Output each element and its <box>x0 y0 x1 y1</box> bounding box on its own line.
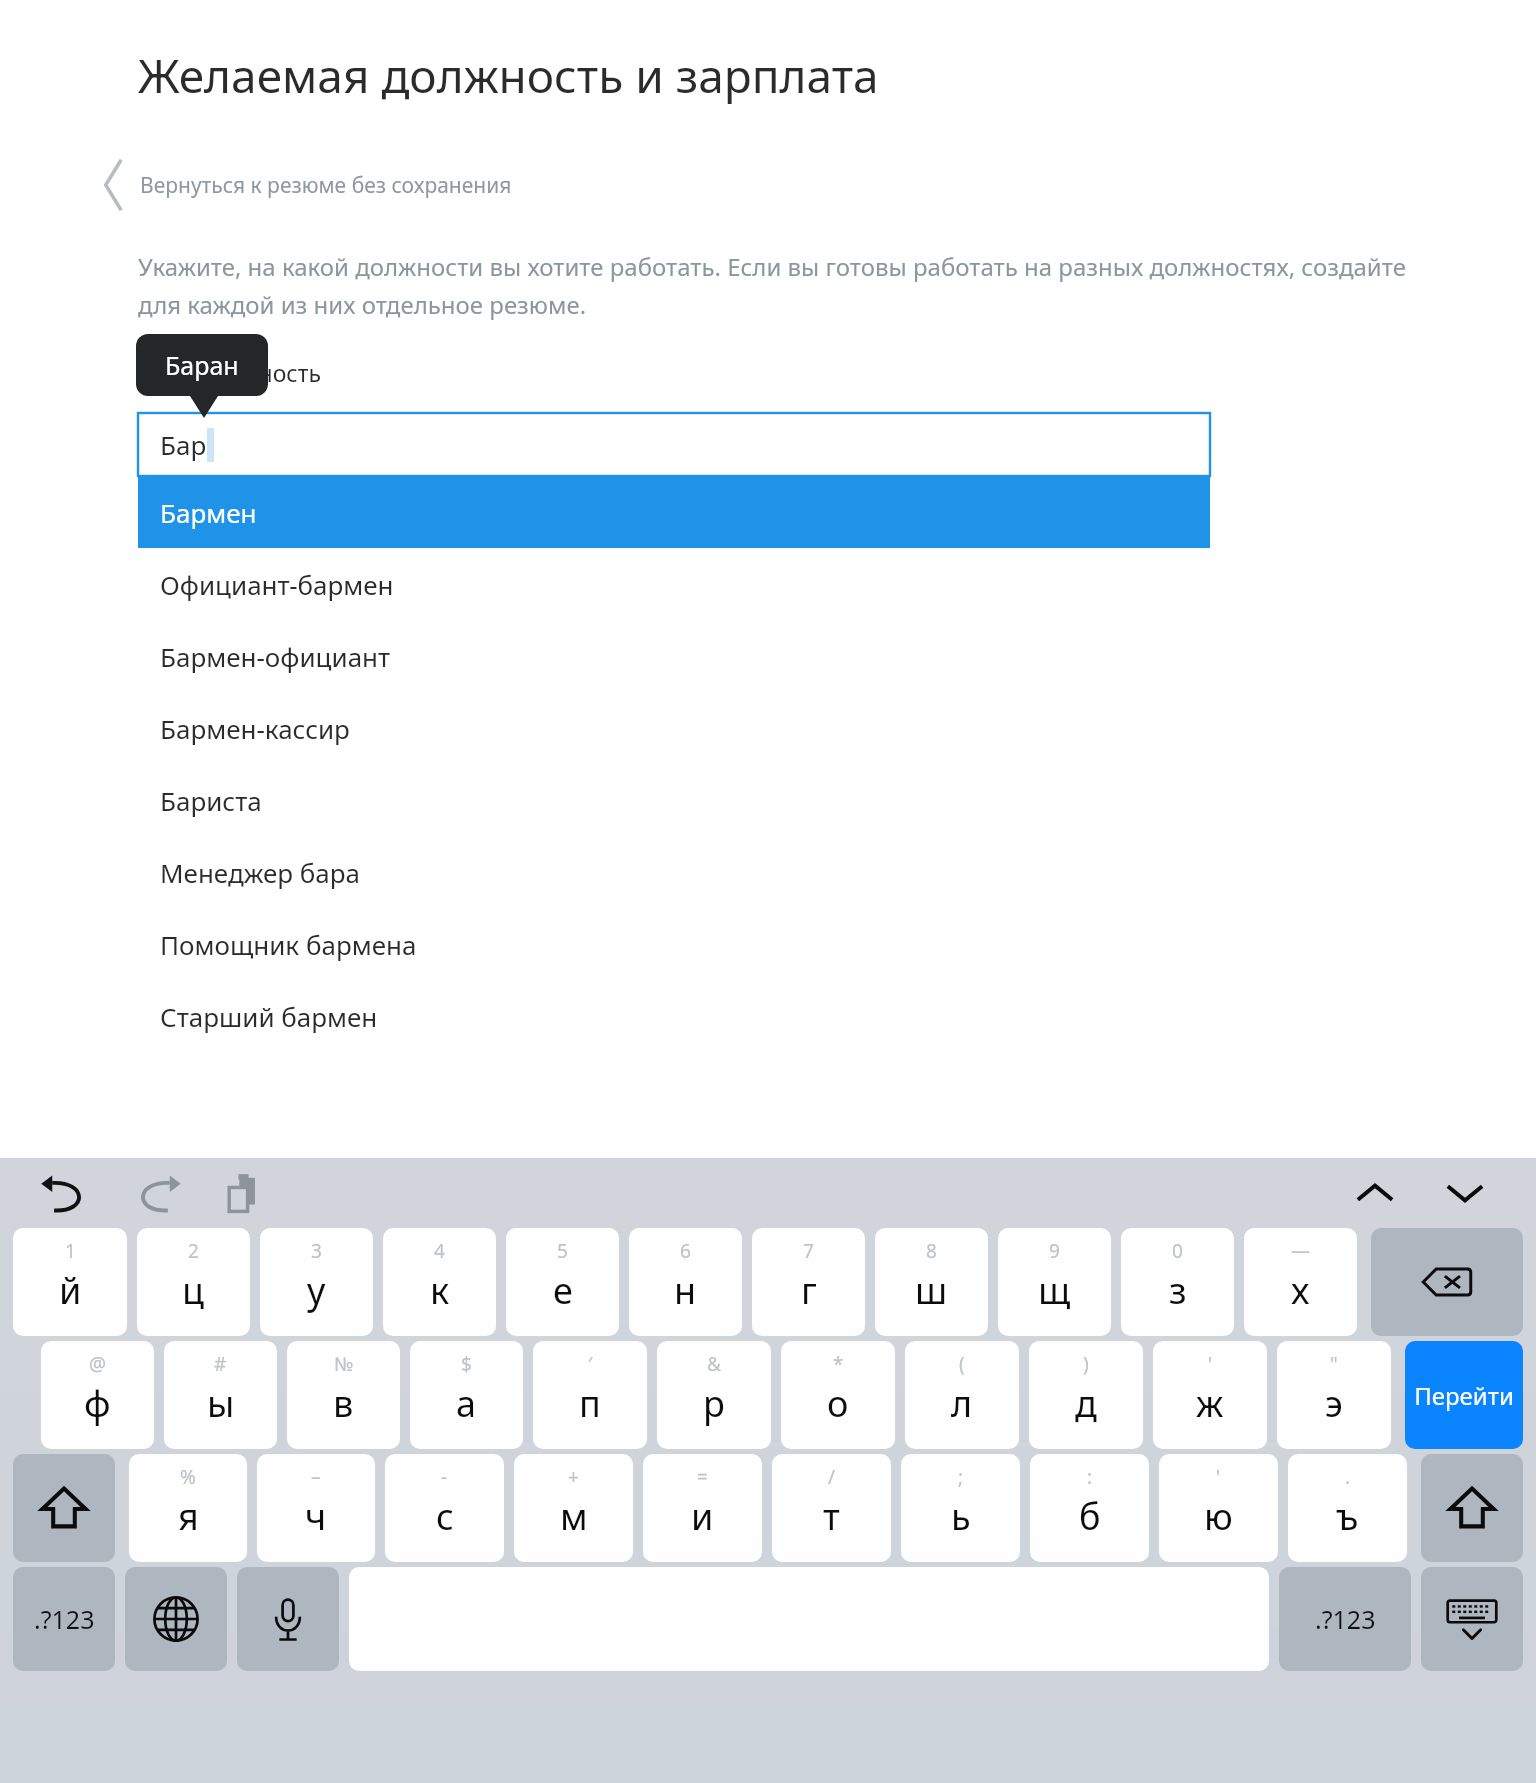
button[interactable]: + <box>514 1454 633 1562</box>
staticText: Бариста <box>160 783 262 818</box>
button[interactable]: Previous field <box>1344 1162 1406 1224</box>
staticText: # <box>214 1351 227 1377</box>
button[interactable]: ′ <box>533 1341 647 1449</box>
button[interactable]: Помощник бармена <box>138 908 1210 980</box>
button[interactable]: ' <box>1153 1341 1267 1449</box>
button[interactable]: : <box>1030 1454 1149 1562</box>
staticText: ж <box>1196 1379 1224 1428</box>
staticText: 1 <box>65 1238 76 1264</box>
button[interactable]: Next field <box>1434 1162 1496 1224</box>
button[interactable]: # <box>164 1341 277 1449</box>
button[interactable]: * <box>781 1341 895 1449</box>
button[interactable]: Paste <box>212 1162 274 1224</box>
staticText: э <box>1325 1379 1343 1428</box>
button[interactable]: = <box>643 1454 762 1562</box>
staticText: ' <box>1208 1351 1213 1377</box>
staticText: . <box>1345 1464 1351 1490</box>
staticText: : <box>1087 1464 1093 1490</box>
button[interactable]: – <box>257 1454 375 1562</box>
staticText: Бармен-официант <box>160 639 391 674</box>
staticText: № <box>334 1351 354 1377</box>
button[interactable]: Официант-бармен <box>138 548 1210 620</box>
staticText: & <box>707 1351 721 1377</box>
staticText: должность <box>200 357 321 388</box>
staticText: и <box>691 1492 714 1541</box>
button[interactable]: $ <box>410 1341 523 1449</box>
button[interactable]: Hide keyboard <box>1421 1567 1523 1671</box>
button[interactable]: ' <box>1159 1454 1278 1562</box>
staticText: 0 <box>1172 1238 1183 1264</box>
button[interactable]: " <box>1277 1341 1391 1449</box>
staticText: й <box>59 1266 82 1315</box>
staticText: Баран <box>165 348 239 382</box>
button[interactable]: № <box>287 1341 400 1449</box>
button[interactable]: Shift <box>1421 1454 1523 1562</box>
button[interactable]: Undo <box>36 1162 98 1224</box>
staticText: ' <box>1216 1464 1221 1490</box>
button[interactable]: ( <box>905 1341 1019 1449</box>
button[interactable]: — <box>1244 1228 1357 1336</box>
staticText: о <box>827 1379 849 1428</box>
button[interactable]: 5 <box>506 1228 619 1336</box>
staticText: Перейти <box>1414 1379 1514 1412</box>
button[interactable]: 8 <box>875 1228 988 1336</box>
button[interactable]: 1 <box>13 1228 127 1336</box>
staticText: - <box>441 1464 448 1490</box>
staticText: Желаемая должность и зарплата <box>138 44 879 107</box>
staticText: ш <box>915 1266 948 1315</box>
button[interactable]: .?123 <box>1279 1567 1411 1671</box>
button[interactable]: Бариста <box>138 764 1210 836</box>
button[interactable]: 6 <box>629 1228 742 1336</box>
staticText: ( <box>959 1351 965 1377</box>
button[interactable]: 0 <box>1121 1228 1234 1336</box>
staticText: ц <box>182 1266 205 1315</box>
staticText: г <box>801 1266 817 1315</box>
button[interactable]: Перейти <box>1405 1341 1523 1449</box>
staticText: ; <box>958 1464 964 1490</box>
button[interactable]: Бар <box>138 413 1210 476</box>
button[interactable]: & <box>657 1341 771 1449</box>
staticText: ′ <box>588 1351 593 1377</box>
staticText: л <box>951 1379 973 1428</box>
button[interactable]: Бармен-официант <box>138 620 1210 692</box>
button[interactable]: % <box>129 1454 247 1562</box>
staticText: п <box>579 1379 601 1428</box>
button[interactable]: 9 <box>998 1228 1111 1336</box>
button[interactable]: Старший бармен <box>138 980 1210 1052</box>
staticText: 7 <box>803 1238 814 1264</box>
staticText: Бармен-кассир <box>160 711 350 746</box>
button[interactable]: Backspace <box>1371 1228 1523 1336</box>
button[interactable]: Redo <box>124 1162 186 1224</box>
staticText: я <box>178 1492 199 1541</box>
button[interactable]: 2 <box>137 1228 250 1336</box>
button[interactable]: ) <box>1029 1341 1143 1449</box>
button[interactable]: Dictation <box>237 1567 339 1671</box>
staticText: е <box>553 1266 573 1315</box>
button[interactable]: .?123 <box>13 1567 115 1671</box>
button[interactable]: Shift <box>13 1454 115 1562</box>
button[interactable]: / <box>772 1454 891 1562</box>
button[interactable]: Вернуться к резюме без сохранения <box>0 150 1536 220</box>
button[interactable]: @ <box>41 1341 154 1449</box>
staticText: щ <box>1038 1266 1071 1315</box>
button[interactable]: Change language <box>125 1567 227 1671</box>
staticText: к <box>430 1266 450 1315</box>
staticText: Старший бармен <box>160 999 378 1034</box>
staticText: т <box>823 1492 840 1541</box>
staticText: Укажите, на какой должности вы хотите ра… <box>138 250 1406 321</box>
button[interactable]: . <box>1288 1454 1407 1562</box>
button[interactable]: 3 <box>260 1228 373 1336</box>
staticText: + <box>568 1464 579 1490</box>
button[interactable]: Бармен-кассир <box>138 692 1210 764</box>
button[interactable]: 7 <box>752 1228 865 1336</box>
button[interactable]: Бармен <box>138 476 1210 548</box>
button[interactable]: 4 <box>383 1228 496 1336</box>
button[interactable]: Менеджер бара <box>138 836 1210 908</box>
staticText: ъ <box>1336 1492 1359 1541</box>
staticText: Официант-бармен <box>160 567 394 602</box>
button[interactable]: ; <box>901 1454 1020 1562</box>
staticText: 8 <box>926 1238 937 1264</box>
staticText: Менеджер бара <box>160 855 361 890</box>
button[interactable]: - <box>385 1454 504 1562</box>
